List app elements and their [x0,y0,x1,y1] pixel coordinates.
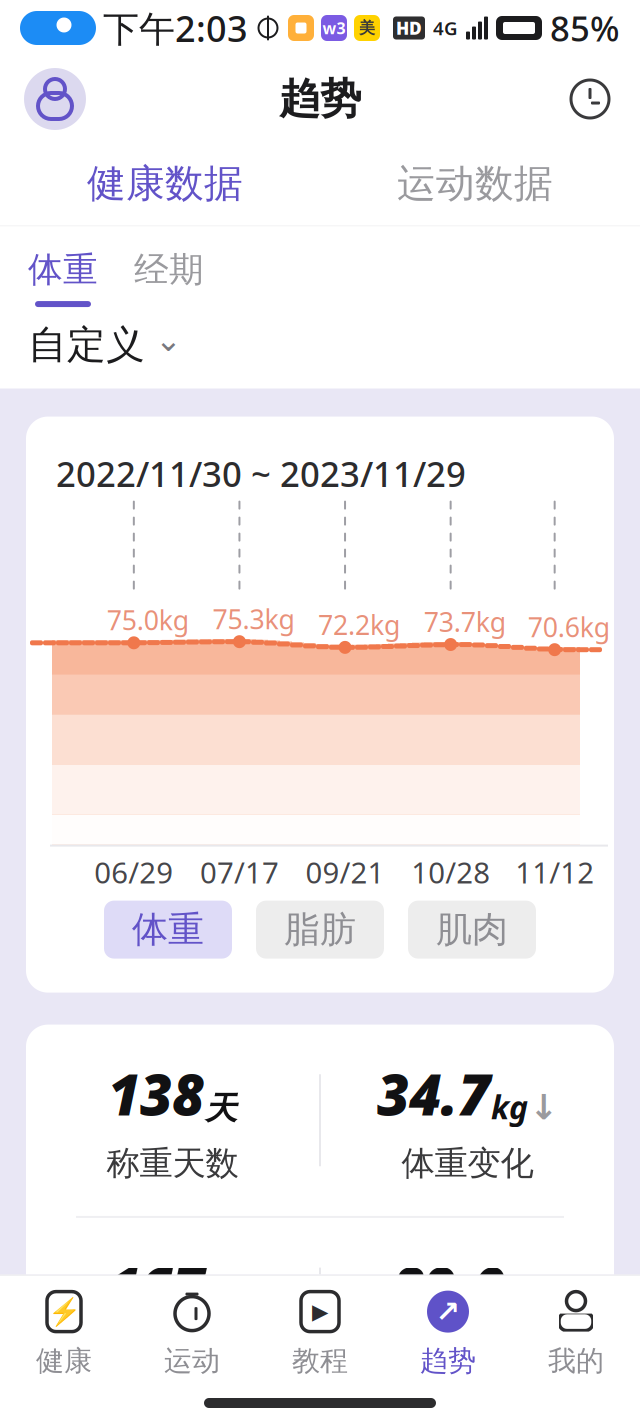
staticText: 平均体重 [401,1336,533,1377]
staticText: 70.6kg [528,609,610,645]
button[interactable]: 运动数据 [320,142,630,225]
staticText: 称重天数 [106,1143,238,1184]
staticText: 体重 [28,248,98,291]
staticText: ▶ [312,1299,328,1324]
staticText: 09/21 [305,853,384,892]
staticText: 趋势 [420,1344,476,1378]
staticText: 07/17 [200,853,279,892]
button[interactable]: 运动 [128,1276,256,1386]
staticText: 85% [550,5,620,51]
staticText: 167 [108,1250,204,1324]
staticText: 下午2:03 [103,4,248,52]
button[interactable]: ▶ [256,1276,384,1386]
button[interactable]: 历史记录 [564,73,616,125]
staticText: 天 [205,1089,237,1128]
staticText: 89.0 [392,1250,505,1324]
staticText: w3 [322,17,345,39]
button[interactable]: ⚡ [0,1276,128,1386]
staticText: 运动数据 [397,160,553,207]
staticText: kg [491,1085,528,1128]
staticText: HD [396,16,422,39]
button[interactable]: 个人资料 [24,68,86,130]
staticText: ↓ [529,1088,558,1127]
staticText: 我的 [548,1344,604,1378]
staticText: 经期 [134,248,204,291]
staticText: 健康 [36,1344,92,1378]
staticText: ⚡ [47,1296,80,1327]
staticText: 运动 [164,1344,220,1378]
staticText: 脂肪 [284,907,356,952]
staticText: 72.2kg [318,607,400,642]
button[interactable]: 体重 [104,901,232,959]
button[interactable]: 健康数据 [10,142,320,225]
button[interactable]: 脂肪 [256,901,384,959]
button[interactable]: 自定义 [28,307,182,383]
staticText: 2022/11/30 ~ 2023/11/29 [56,451,466,497]
button[interactable]: 体重 [28,248,98,307]
staticText: 健康数据 [87,160,243,207]
staticText: 教程 [292,1344,348,1378]
button[interactable]: ↗ [384,1276,512,1386]
staticText: ↗ [435,1295,460,1328]
staticText: ⌄ [155,322,182,358]
staticText: 趋势 [279,74,361,124]
button[interactable]: 经期 [134,248,204,307]
button[interactable]: 肌肉 [408,901,536,959]
staticText: 体重 [132,907,204,952]
staticText: 10/28 [411,853,490,892]
staticText: 美 [359,18,375,38]
staticText: 4G [433,16,458,40]
staticText: 次 [205,1282,237,1321]
staticText: 138 [108,1057,204,1131]
staticText: 11/12 [515,853,594,892]
button[interactable]: 我的 [512,1276,640,1386]
staticText: 体重变化 [401,1143,533,1184]
staticText: 75.0kg [107,602,189,638]
staticText: 自定义 [28,321,145,369]
staticText: 75.3kg [212,601,294,637]
staticText: 肌肉 [436,907,508,952]
staticText: 73.7kg [424,604,506,639]
staticText: 34.7 [377,1057,490,1131]
staticText: 06/29 [94,853,173,892]
staticText: 称重次数 [106,1336,238,1377]
